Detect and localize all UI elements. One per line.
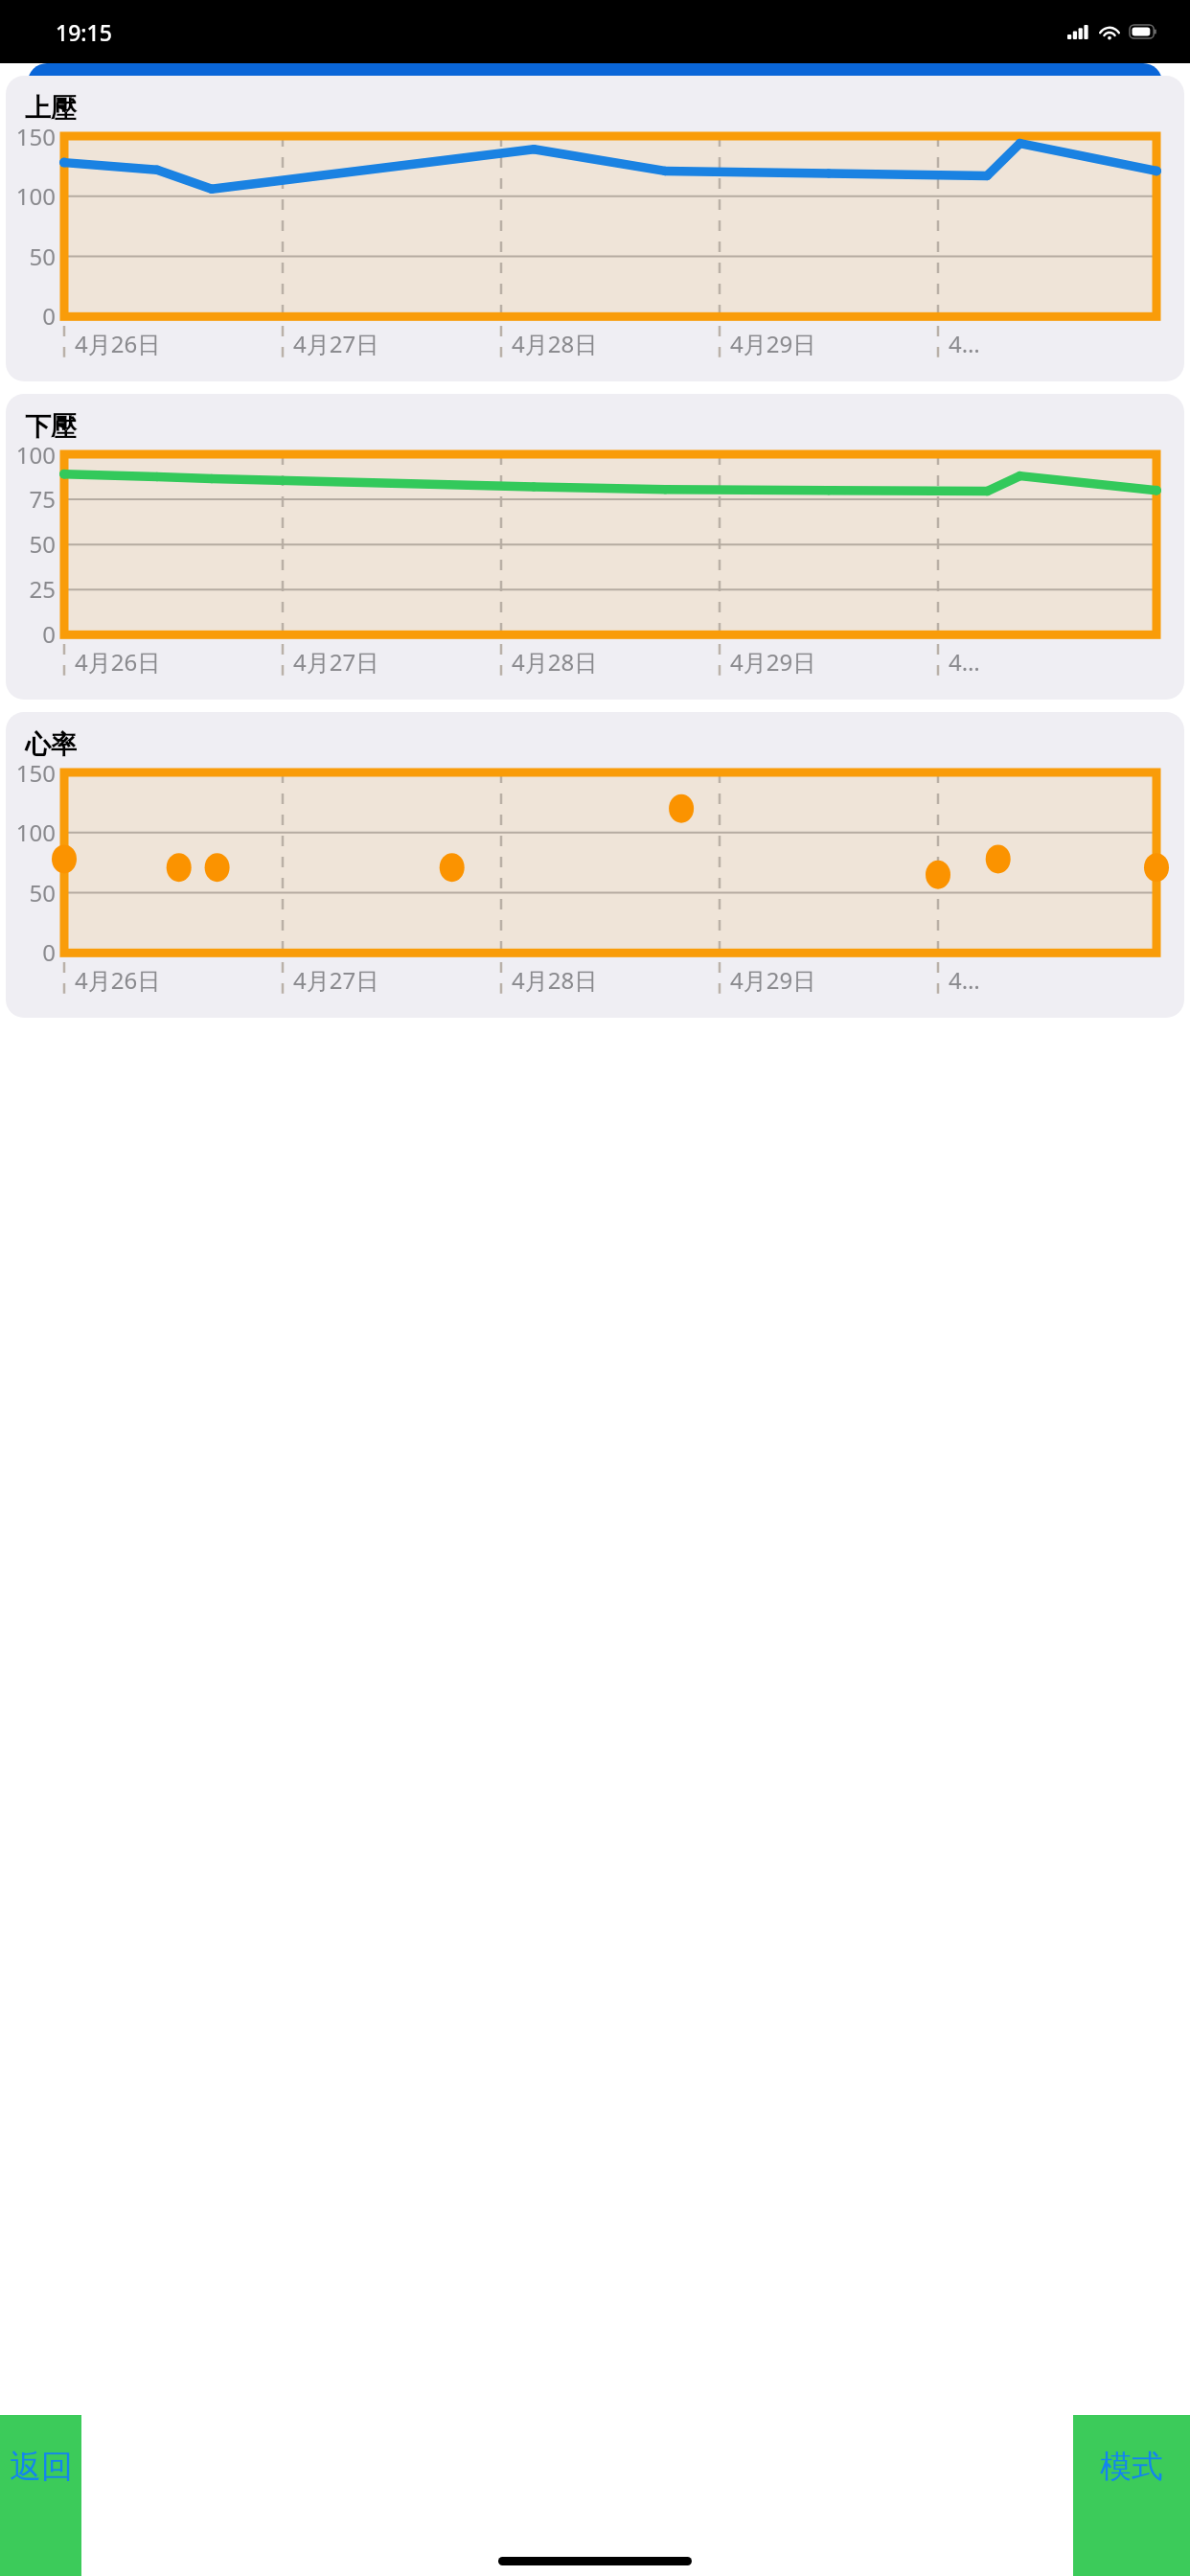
staticText: 0 bbox=[6, 300, 56, 332]
staticText: 4月27日 bbox=[293, 964, 379, 996]
staticText: 4月29日 bbox=[730, 646, 816, 678]
staticText: 4月26日 bbox=[75, 964, 161, 996]
button[interactable]: 上壓 bbox=[6, 76, 1184, 381]
other: Battery bbox=[1130, 25, 1157, 38]
staticText: 4月26日 bbox=[75, 646, 161, 678]
staticText: 25 bbox=[6, 573, 56, 605]
button[interactable]: 模式 bbox=[1073, 2415, 1190, 2576]
staticText: 4月28日 bbox=[512, 964, 598, 996]
staticText: 100 bbox=[6, 439, 56, 471]
button[interactable]: 下壓 bbox=[6, 394, 1184, 700]
staticText: 心率 bbox=[25, 728, 77, 761]
staticText: 4月28日 bbox=[512, 646, 598, 678]
staticText: 100 bbox=[6, 180, 56, 212]
staticText: 4… bbox=[949, 646, 980, 678]
staticText: 19:15 bbox=[56, 17, 112, 47]
other: Wi-Fi bbox=[1099, 24, 1120, 39]
button[interactable]: 返回 bbox=[0, 2415, 81, 2576]
staticText: 4月29日 bbox=[730, 964, 816, 996]
staticText: 4月27日 bbox=[293, 328, 379, 359]
staticText: 4月28日 bbox=[512, 328, 598, 359]
staticText: 4月26日 bbox=[75, 328, 161, 359]
staticText: 150 bbox=[6, 121, 56, 152]
staticText: 50 bbox=[6, 241, 56, 272]
staticText: 0 bbox=[6, 618, 56, 650]
staticText: 50 bbox=[6, 877, 56, 908]
staticText: 模式 bbox=[1100, 2447, 1163, 2487]
staticText: 4… bbox=[949, 328, 980, 359]
staticText: 100 bbox=[6, 816, 56, 848]
staticText: 下壓 bbox=[25, 410, 77, 443]
staticText: 4月27日 bbox=[293, 646, 379, 678]
staticText: 75 bbox=[6, 483, 56, 515]
button[interactable]: 心率 bbox=[6, 712, 1184, 1018]
staticText: 返回 bbox=[10, 2447, 73, 2487]
staticText: 150 bbox=[6, 757, 56, 789]
staticText: 4月29日 bbox=[730, 328, 816, 359]
staticText: 50 bbox=[6, 528, 56, 560]
staticText: 上壓 bbox=[25, 92, 77, 125]
other: Cellular signal bbox=[1067, 25, 1089, 39]
staticText: 4… bbox=[949, 964, 980, 996]
staticText: 0 bbox=[6, 936, 56, 968]
